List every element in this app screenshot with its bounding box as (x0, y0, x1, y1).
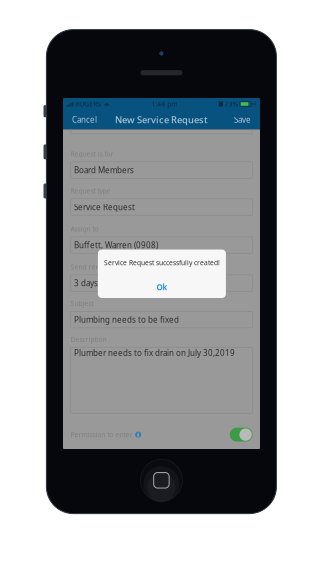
staticText: Request type (71, 186, 111, 195)
staticText: Request is for (71, 149, 114, 158)
staticText: Send reminder in (71, 262, 127, 271)
staticText: Save (234, 114, 251, 125)
staticText: Ok (156, 282, 167, 292)
button[interactable]: Ok (98, 276, 226, 298)
button[interactable]: Cancel (65, 110, 103, 129)
staticText: Description (71, 335, 107, 344)
staticText: i (137, 431, 139, 438)
staticText: Service Request (74, 202, 135, 212)
staticText: Board Members (74, 165, 134, 175)
staticText: Subject (71, 299, 94, 308)
button[interactable]: Save (227, 110, 257, 129)
staticText: Plumber needs to fix drain on July 30,20… (74, 348, 235, 358)
staticText: Plumbing needs to be fixed (74, 314, 179, 325)
staticText: ROGERS (75, 100, 101, 108)
staticText: 1:44 pm (151, 100, 177, 108)
staticText: Permission to enter (71, 430, 133, 439)
staticText: Assign to (71, 224, 99, 233)
staticText: 3 days (74, 278, 98, 288)
staticText: New Service Request (115, 113, 208, 126)
staticText: Buffett, Warren (0908) (74, 240, 158, 250)
staticText: Service Request successfully created! (104, 258, 220, 267)
staticText: 73% (224, 100, 238, 108)
button[interactable]: Permission to enter (230, 428, 253, 442)
staticText: Cancel (72, 114, 97, 125)
